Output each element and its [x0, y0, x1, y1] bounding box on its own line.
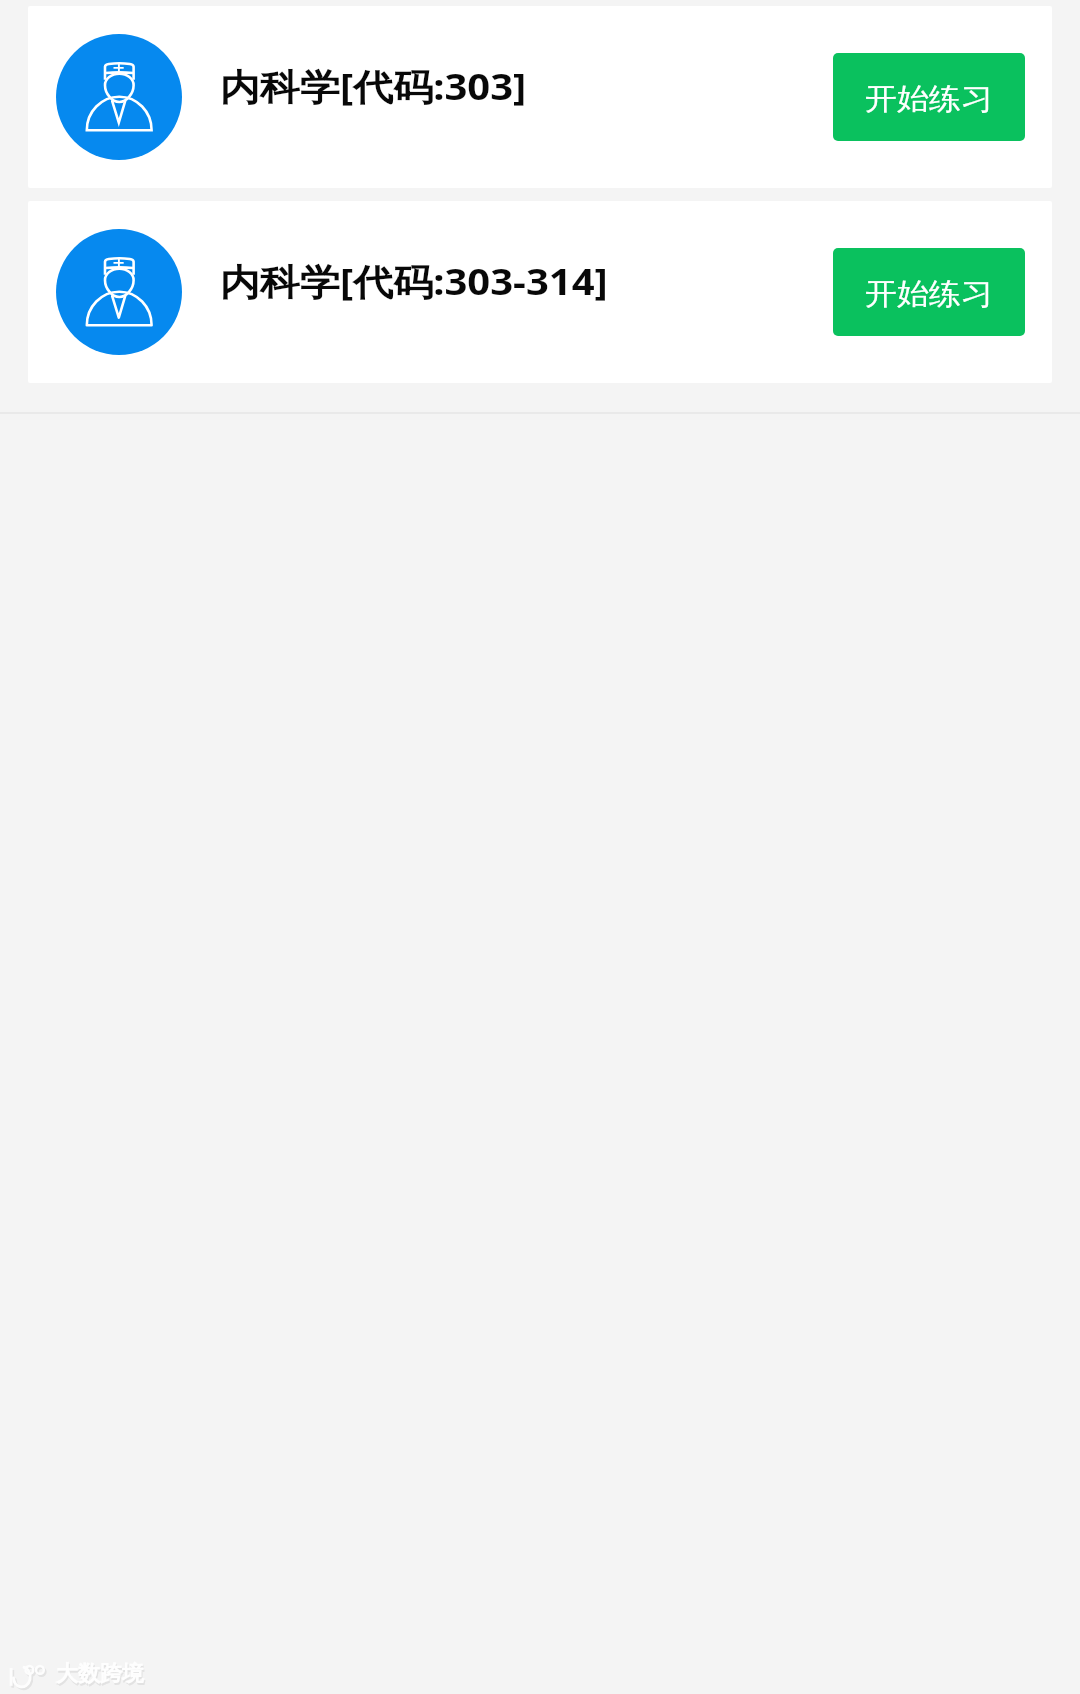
- staticText: 开始练习: [865, 80, 993, 118]
- staticText: 大数跨境: [56, 1660, 144, 1688]
- button[interactable]: Doctor: [28, 6, 1052, 188]
- button[interactable]: 开始练习: [833, 248, 1025, 336]
- staticText: 大数跨境: [57, 1662, 145, 1690]
- button[interactable]: Doctor: [28, 201, 1052, 383]
- staticText: 开始练习: [865, 275, 993, 313]
- staticText: 内科学[代码:303-314]: [220, 256, 608, 305]
- other: Doctor: [56, 34, 182, 160]
- button[interactable]: 开始练习: [833, 53, 1025, 141]
- staticText: 内科学[代码:303]: [220, 61, 527, 110]
- other: Doctor: [56, 229, 182, 355]
